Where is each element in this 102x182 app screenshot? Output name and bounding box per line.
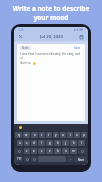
staticText: h (57, 141, 59, 145)
staticText: r (41, 133, 43, 137)
staticText: j (65, 141, 66, 145)
staticText: p (83, 133, 85, 137)
button[interactable]: v (46, 148, 53, 154)
staticText: k (73, 141, 75, 145)
button[interactable]: Backspace (78, 148, 87, 154)
staticText: a (19, 141, 21, 145)
staticText: x (33, 149, 35, 153)
staticText: u (62, 133, 64, 137)
staticText: g (49, 141, 51, 145)
staticText: t (48, 133, 50, 137)
button[interactable]: Keyboard settings (24, 156, 30, 162)
staticText: w (25, 133, 28, 137)
staticText: z (26, 149, 28, 153)
button[interactable]: f (38, 140, 45, 146)
staticText: c (41, 149, 43, 153)
staticText: v (49, 149, 51, 153)
button[interactable]: m (70, 148, 77, 154)
staticText: Write a note to describe your mood (8, 4, 94, 21)
staticText: Jul 20, 2020 (40, 34, 63, 40)
button[interactable]: Note (20, 46, 31, 50)
button[interactable]: q (15, 132, 22, 138)
button[interactable]: s (24, 140, 30, 146)
button[interactable]: t (46, 132, 52, 138)
staticText: Next (78, 158, 84, 161)
staticText: q (18, 133, 20, 137)
button[interactable]: . (67, 156, 73, 162)
button[interactable]: Close (17, 33, 24, 40)
button[interactable]: o (74, 132, 80, 138)
button[interactable]: Save (73, 46, 82, 50)
staticText: . (70, 157, 71, 161)
staticText: f (41, 141, 42, 145)
staticText: o (76, 133, 78, 137)
button[interactable]: Shift (15, 148, 23, 154)
staticText: l (81, 141, 82, 145)
button[interactable]: Emoji suggestion (19, 126, 22, 129)
button[interactable]: r (39, 132, 45, 138)
button[interactable]: k (70, 140, 77, 146)
staticText: s (26, 141, 28, 145)
staticText: b (57, 149, 59, 153)
button[interactable]: h (54, 140, 61, 146)
staticText: d (33, 141, 35, 145)
button[interactable]: b (54, 148, 61, 154)
button[interactable]: g (46, 140, 53, 146)
button[interactable]: d (31, 140, 37, 146)
button[interactable]: Delete note (78, 33, 85, 40)
button[interactable]: ?1? (15, 156, 23, 162)
button[interactable]: x (31, 148, 37, 154)
button[interactable]: Voice input (31, 156, 37, 162)
staticText: I love that I can describe why I'm okay,… (20, 52, 82, 60)
staticText: ?1? (17, 157, 22, 161)
button[interactable]: e (31, 132, 38, 138)
staticText: Save (74, 46, 81, 50)
button[interactable]: p (81, 132, 87, 138)
button[interactable]: c (38, 148, 45, 154)
button[interactable]: w (23, 132, 30, 138)
button[interactable]: n (62, 148, 69, 154)
staticText: like it is. (20, 61, 32, 65)
button[interactable]: i (67, 132, 73, 138)
button[interactable]: Next (74, 156, 87, 162)
staticText: e (34, 133, 36, 137)
button[interactable]: j (62, 140, 69, 146)
button[interactable]: u (60, 132, 66, 138)
staticText: n (65, 149, 67, 153)
button[interactable]: y (53, 132, 59, 138)
staticText: i (70, 133, 71, 137)
staticText: m (72, 149, 75, 153)
button[interactable]: l (78, 140, 85, 146)
button[interactable]: a (17, 140, 23, 146)
staticText: Note (22, 46, 29, 50)
staticText: 2:45 (18, 28, 24, 32)
staticText: y (55, 133, 57, 137)
button[interactable]: z (24, 148, 30, 154)
